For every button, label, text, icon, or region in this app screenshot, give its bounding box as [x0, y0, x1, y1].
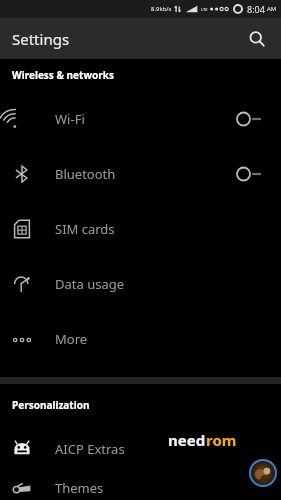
button[interactable]	[235, 109, 271, 129]
button[interactable]: Profile	[251, 461, 275, 485]
button[interactable]: SIM cards	[0, 201, 281, 256]
staticText: Wireless & networks	[12, 68, 114, 82]
staticText: Bluetooth	[55, 165, 116, 183]
button[interactable]: Wi-Fi	[0, 91, 281, 146]
button[interactable]: Search	[241, 23, 273, 55]
staticText: Settings	[12, 29, 70, 49]
staticText: need	[168, 430, 206, 450]
staticText: LTE	[201, 7, 208, 12]
staticText: 8:04	[247, 3, 265, 15]
button[interactable]	[235, 164, 271, 184]
button[interactable]: AICP Extras	[0, 421, 281, 476]
staticText: Themes	[55, 479, 104, 497]
button[interactable]: Bluetooth	[0, 146, 281, 201]
button[interactable]: More	[0, 311, 281, 366]
staticText: Wi-Fi	[55, 110, 85, 128]
staticText: 8.9kb/s	[151, 5, 172, 13]
button[interactable]: Themes	[0, 476, 281, 500]
staticText: Personalization	[12, 398, 90, 412]
staticText: AM	[267, 5, 277, 13]
staticText: SIM cards	[55, 220, 115, 238]
staticText: More	[55, 330, 88, 348]
staticText: AICP Extras	[55, 440, 125, 458]
button[interactable]: Data usage	[0, 256, 281, 311]
staticText: Data usage	[55, 275, 125, 293]
staticText: rom	[206, 430, 237, 450]
